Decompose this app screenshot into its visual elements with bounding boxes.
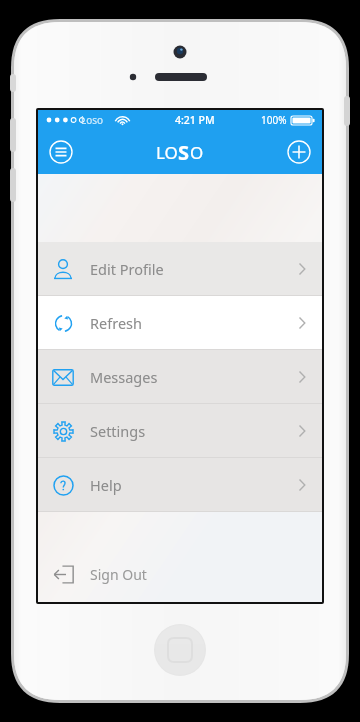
staticText: Help xyxy=(90,475,122,495)
staticText: Settings xyxy=(90,421,146,441)
staticText: 4:21 PM xyxy=(175,113,215,127)
staticText: LO xyxy=(156,141,178,164)
staticText: Refresh xyxy=(90,313,142,333)
button[interactable]: Messages xyxy=(38,350,322,403)
staticText: Messages xyxy=(90,367,158,387)
button[interactable]: Sign Out xyxy=(38,554,322,594)
staticText: S xyxy=(178,139,190,166)
button[interactable]: Help xyxy=(38,458,322,511)
staticText: Edit Profile xyxy=(90,259,164,279)
button[interactable]: Edit Profile xyxy=(38,242,322,295)
staticText: O xyxy=(190,141,204,164)
button[interactable]: Settings xyxy=(38,404,322,457)
button[interactable]: Add xyxy=(286,139,312,165)
button[interactable]: Menu xyxy=(48,139,74,165)
staticText: 100% xyxy=(261,113,287,127)
staticText: Sign Out xyxy=(90,565,147,584)
button[interactable]: Refresh xyxy=(38,296,322,349)
staticText: Loso xyxy=(81,113,104,127)
